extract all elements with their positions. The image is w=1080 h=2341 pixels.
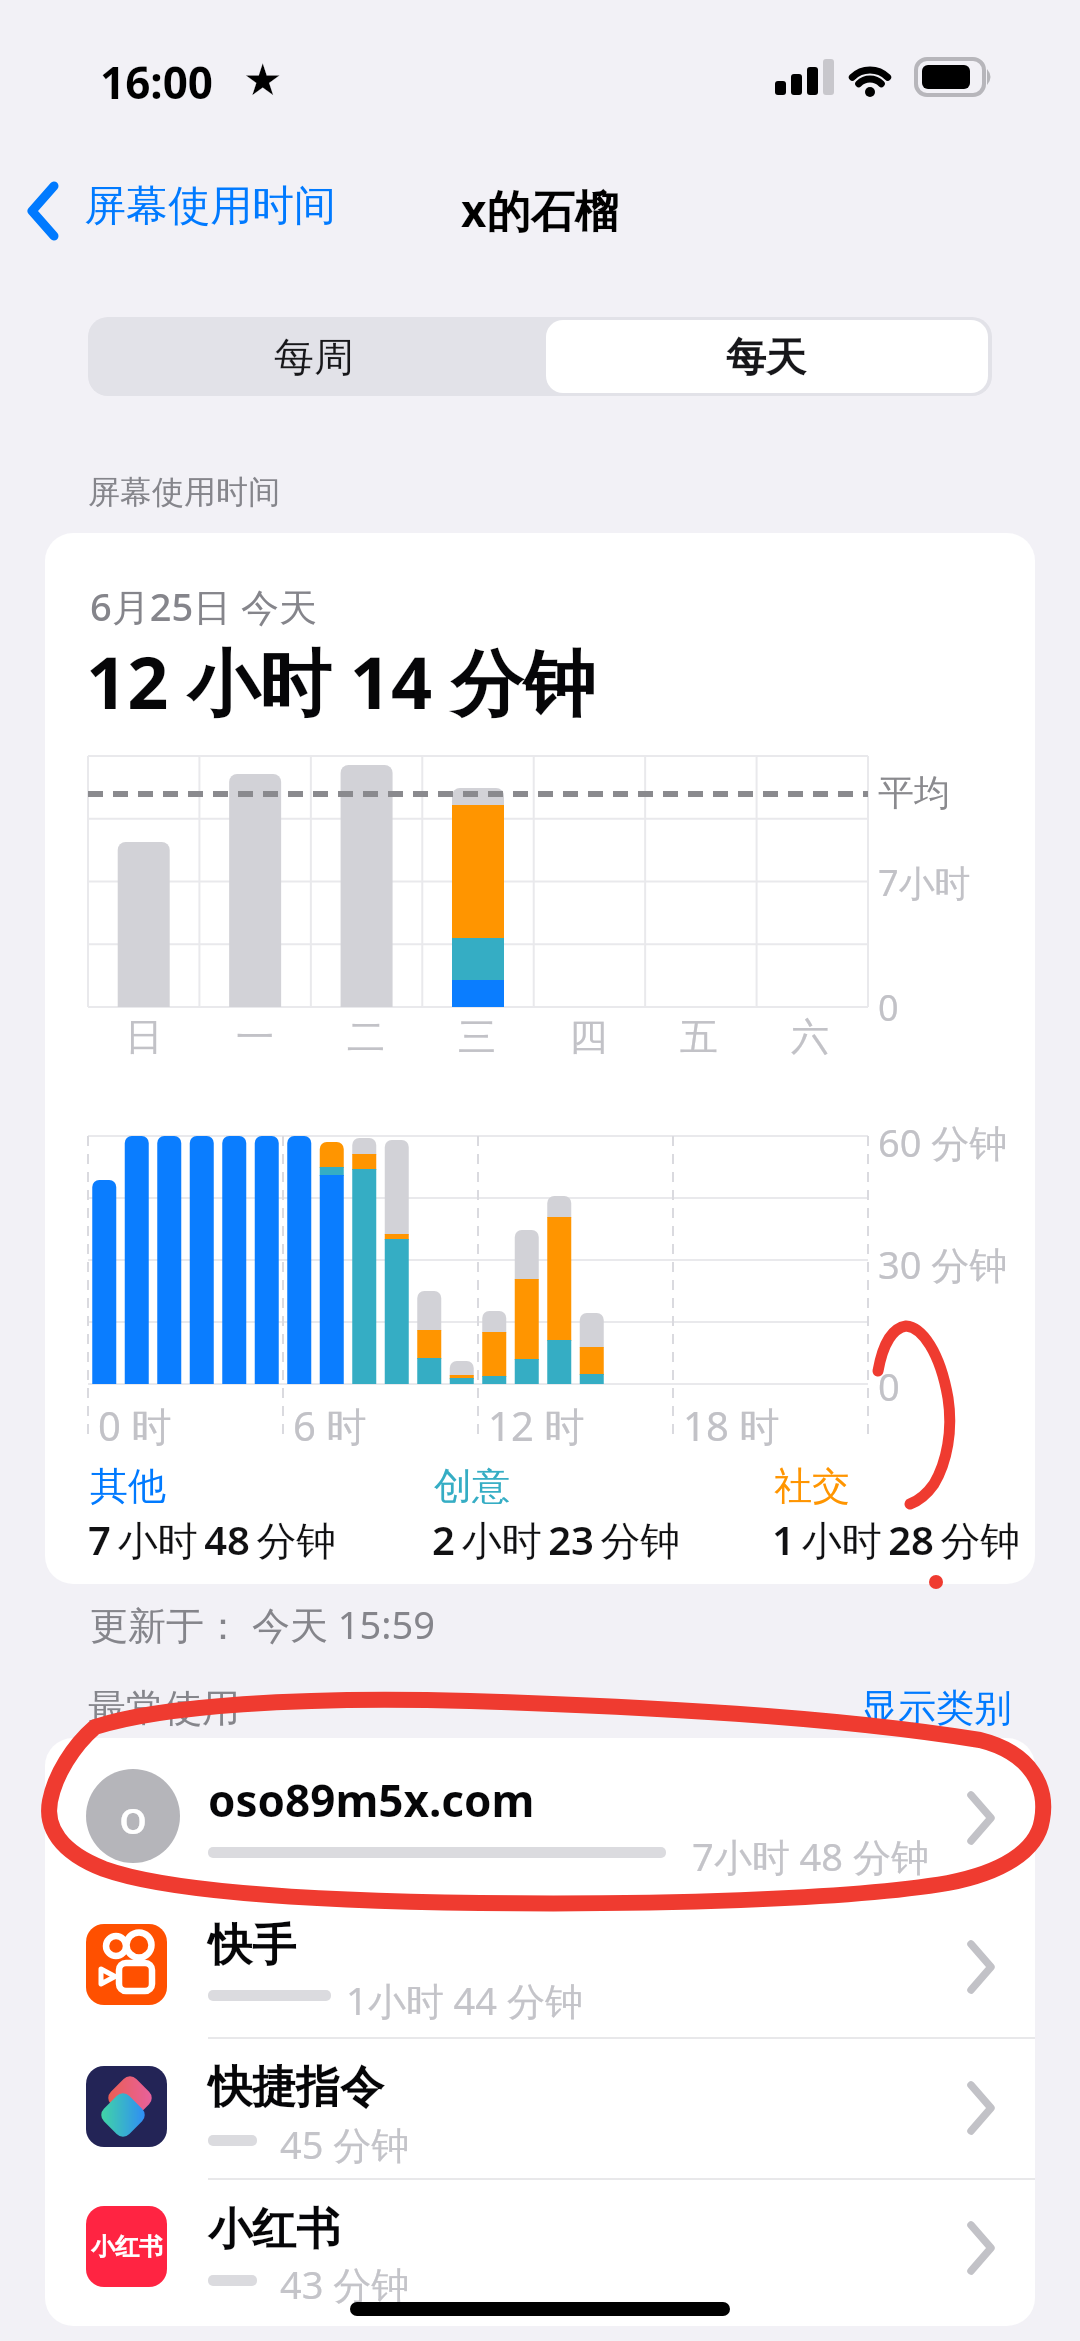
staticText: 60 分钟 xyxy=(878,1116,1008,1168)
staticText: 7小时 48 分钟 xyxy=(692,1830,929,1882)
staticText: 小红书 xyxy=(91,2232,163,2262)
staticText: 五 xyxy=(680,1013,718,1061)
staticText: 0 时 xyxy=(98,1398,172,1453)
staticText: 12 小时 14 分钟 xyxy=(86,632,595,730)
staticText: 三 xyxy=(458,1013,496,1061)
staticText: 一 xyxy=(236,1013,274,1061)
staticText: 0 xyxy=(878,983,899,1032)
staticText: 7小时 xyxy=(878,858,971,907)
button[interactable] xyxy=(45,1742,1035,1894)
staticText: 0 xyxy=(878,1360,900,1412)
staticText: 6月25日 今天 xyxy=(90,580,318,632)
staticText: 7 小时 48 分钟 xyxy=(88,1512,337,1567)
staticText: oso89m5x.com xyxy=(208,1770,535,1830)
staticText: o xyxy=(119,1785,148,1848)
button[interactable]: 每周 xyxy=(88,317,540,396)
staticText: x的石榴 xyxy=(461,180,619,240)
staticText: 四 xyxy=(569,1013,607,1061)
staticText: 平均 xyxy=(878,770,950,815)
staticText: 小红书 xyxy=(208,2202,340,2257)
staticText: 更新于： 今天 15:59 xyxy=(90,1598,435,1650)
staticText: 社交 xyxy=(774,1462,850,1510)
staticText: 16:00 xyxy=(100,52,214,112)
staticText: 屏幕使用时间 xyxy=(88,472,280,512)
staticText: 其他 xyxy=(90,1462,166,1510)
staticText: 每天 xyxy=(726,332,806,382)
staticText: 屏幕使用时间 xyxy=(84,180,336,233)
staticText: 30 分钟 xyxy=(878,1238,1008,1290)
staticText: 12 时 xyxy=(488,1398,585,1453)
staticText: ★ xyxy=(243,54,283,105)
staticText: 45 分钟 xyxy=(280,2118,410,2170)
button[interactable]: 每天 xyxy=(540,317,992,396)
staticText: 18 时 xyxy=(683,1398,780,1453)
staticText: 1小时 44 分钟 xyxy=(346,1974,583,2026)
staticText: 最常使用 xyxy=(88,1684,240,1732)
staticText: 1 小时 28 分钟 xyxy=(772,1512,1021,1567)
staticText: 创意 xyxy=(434,1462,510,1510)
button[interactable]: 屏幕使用时间 xyxy=(20,175,380,245)
staticText: 二 xyxy=(347,1013,385,1061)
staticText: 6 时 xyxy=(293,1398,367,1453)
button[interactable] xyxy=(45,2040,1035,2180)
staticText: 每周 xyxy=(274,332,354,382)
button[interactable] xyxy=(45,1896,1035,2038)
staticText: 2 小时 23 分钟 xyxy=(432,1512,681,1567)
staticText: 43 分钟 xyxy=(280,2258,410,2310)
staticText: 六 xyxy=(791,1013,829,1061)
staticText: 快捷指令 xyxy=(208,2060,384,2115)
staticText: 日 xyxy=(125,1013,163,1061)
staticText: 快手 xyxy=(208,1918,296,1973)
button[interactable] xyxy=(45,2182,1035,2326)
